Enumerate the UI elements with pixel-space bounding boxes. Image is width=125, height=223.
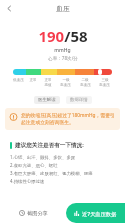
staticText: 高血压 <box>99 83 110 88</box>
button[interactable]: 建议您关注是否有一下情况: <box>5 136 120 191</box>
staticText: 一级 <box>62 78 70 83</box>
staticText: 血压 <box>56 4 70 13</box>
staticText: 190/58 <box>38 26 88 46</box>
staticText: 2.食欲亢进、恶心、呕吐 <box>10 162 58 168</box>
staticText: 数据详情 <box>70 97 88 103</box>
button[interactable]: 您的收缩压(高压)超过了180mmHg，需要引起注意或立刻咨询医生。 <box>5 108 120 130</box>
staticText: 1.心慌、出汗、颤抖、多饮、多尿 <box>10 154 76 160</box>
staticText: 截图分享 <box>27 210 48 217</box>
staticText: 高血压 <box>80 83 91 88</box>
staticText: 建议您关注是否有一下情况: <box>15 141 84 149</box>
staticText: 近7天血压数据 <box>82 210 117 217</box>
staticText: 心率：78次/分 <box>48 55 78 61</box>
button[interactable]: 截图分享 <box>0 203 66 223</box>
button[interactable]: 数据详情 <box>66 96 92 104</box>
staticText: 4.持续性心悸过速 <box>10 178 45 184</box>
button[interactable]: 医生解读 <box>34 96 60 104</box>
staticText: 三级 <box>101 78 109 83</box>
staticText: 正常 <box>29 78 37 83</box>
staticText: 低血压 <box>13 78 24 83</box>
staticText: 正常 <box>44 78 52 83</box>
staticText: 二级 <box>81 78 89 83</box>
staticText: 3.有巨大胖痛、皮肤潮红、视力模糊、眼痛 <box>10 170 93 176</box>
staticText: 高血压 <box>60 83 71 88</box>
button[interactable]: Back <box>2 1 17 16</box>
staticText: mmHg <box>54 47 71 54</box>
button[interactable]: 近7天血压数据 <box>66 203 125 223</box>
staticText: 您的收缩压(高压)超过了180mmHg，需要引起注意或立刻咨询医生。 <box>21 112 116 126</box>
staticText: 医生解读 <box>38 97 56 103</box>
staticText: 高值 <box>44 83 52 88</box>
